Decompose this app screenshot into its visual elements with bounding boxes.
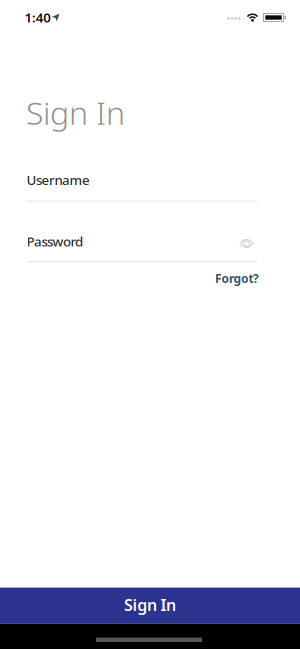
staticText: Password: [26, 232, 83, 250]
staticText: Sign In: [26, 91, 125, 133]
button[interactable]: Username: [26, 171, 257, 203]
staticText: Sign In: [124, 594, 176, 615]
button[interactable]: Password: [26, 232, 257, 264]
button[interactable]: Sign In: [0, 588, 300, 624]
button[interactable]: Show password: [239, 237, 255, 249]
staticText: Forgot?: [215, 270, 259, 286]
staticText: Username: [26, 171, 90, 189]
staticText: 1:40: [24, 8, 51, 26]
button[interactable]: Forgot?: [215, 270, 259, 286]
